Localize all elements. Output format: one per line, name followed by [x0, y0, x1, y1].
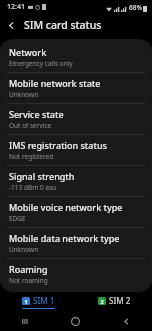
staticText: Mobile network state [9, 77, 101, 89]
button[interactable]: Roaming [0, 259, 152, 289]
button[interactable]: Mobile network state [0, 73, 152, 103]
staticText: Roaming [9, 263, 48, 275]
staticText: Emergency calls only [9, 59, 73, 68]
button[interactable]: Home [50, 312, 101, 331]
staticText: IMS registration status [9, 139, 107, 151]
staticText: Signal strength [9, 170, 75, 182]
staticText: Unknown [9, 90, 39, 99]
staticText: SIM 2 [109, 295, 131, 306]
button[interactable]: Navigate up [0, 14, 22, 36]
staticText: Network [9, 46, 47, 58]
staticText: Out of service [9, 121, 52, 130]
staticText: Not registered [9, 152, 54, 161]
button[interactable]: 2 [98, 295, 131, 309]
staticText: Mobile data network type [9, 232, 120, 244]
button[interactable]: 1 [22, 295, 55, 309]
button[interactable]: Network [0, 42, 152, 72]
staticText: Service state [9, 108, 64, 120]
button[interactable]: Mobile data network type [0, 228, 152, 258]
button[interactable]: Service state [0, 104, 152, 134]
button[interactable]: IMS registration status [0, 135, 152, 165]
staticText: -113 dBm 0 asu [9, 183, 57, 192]
staticText: SIM card status [24, 18, 102, 32]
staticText: EDGE [9, 214, 26, 223]
staticText: Mobile voice network type [9, 201, 123, 213]
button[interactable]: Back [101, 312, 152, 331]
staticText: 1 [24, 298, 28, 305]
staticText: Unknown [9, 245, 39, 254]
staticText: 12:41 [7, 2, 25, 12]
staticText: Not roaming [9, 276, 48, 285]
button[interactable]: Mobile voice network type [0, 197, 152, 227]
button[interactable]: Recent apps [0, 312, 50, 331]
button[interactable]: Signal strength [0, 166, 152, 196]
staticText: 68% [129, 3, 142, 12]
staticText: 2 [100, 298, 104, 305]
staticText: SIM 1 [33, 295, 55, 306]
